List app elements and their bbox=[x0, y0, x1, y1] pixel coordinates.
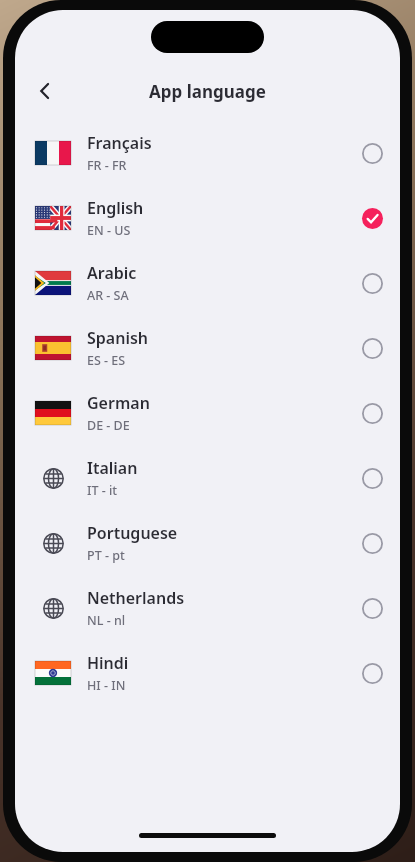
button[interactable]: Netherlands bbox=[15, 575, 400, 640]
button[interactable]: Hindi bbox=[15, 640, 400, 705]
button[interactable]: Portuguese bbox=[15, 510, 400, 575]
button[interactable]: Hindi select bbox=[350, 651, 394, 695]
staticText: Spanish bbox=[87, 327, 149, 349]
staticText: Netherlands bbox=[87, 587, 185, 609]
button[interactable]: Arabic select bbox=[350, 261, 394, 305]
staticText: Italian bbox=[87, 457, 138, 479]
button[interactable]: German bbox=[15, 380, 400, 445]
staticText: App language bbox=[149, 80, 266, 103]
button[interactable]: Italian select bbox=[350, 456, 394, 500]
button[interactable]: Arabic bbox=[15, 250, 400, 315]
button[interactable]: Portuguese select bbox=[350, 521, 394, 565]
staticText: Français bbox=[87, 132, 152, 154]
staticText: Arabic bbox=[87, 262, 137, 284]
staticText: PT - pt bbox=[87, 547, 125, 564]
staticText: NL - nl bbox=[87, 612, 126, 629]
staticText: EN - US bbox=[87, 222, 131, 239]
staticText: FR - FR bbox=[87, 157, 127, 174]
staticText: HI - IN bbox=[87, 677, 126, 694]
staticText: DE - DE bbox=[87, 417, 130, 434]
button[interactable]: English select bbox=[350, 196, 394, 240]
staticText: English bbox=[87, 197, 144, 219]
button[interactable]: Spanish select bbox=[350, 326, 394, 370]
button[interactable]: Français select bbox=[350, 131, 394, 175]
staticText: Hindi bbox=[87, 652, 129, 674]
staticText: Portuguese bbox=[87, 522, 178, 544]
button[interactable]: Back bbox=[23, 69, 67, 113]
button[interactable]: German select bbox=[350, 391, 394, 435]
button[interactable]: Français bbox=[15, 120, 400, 185]
staticText: IT - it bbox=[87, 482, 118, 499]
button[interactable]: Italian bbox=[15, 445, 400, 510]
staticText: German bbox=[87, 392, 150, 414]
button[interactable]: Netherlands select bbox=[350, 586, 394, 630]
button[interactable]: Spanish bbox=[15, 315, 400, 380]
button[interactable]: English bbox=[15, 185, 400, 250]
staticText: ES - ES bbox=[87, 352, 126, 369]
staticText: AR - SA bbox=[87, 287, 129, 304]
